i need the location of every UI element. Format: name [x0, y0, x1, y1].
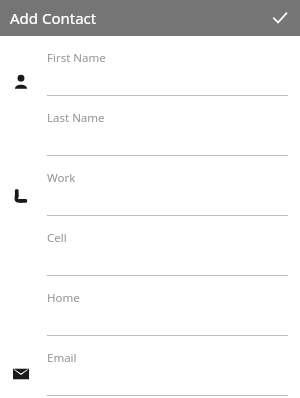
button[interactable]: First Name [0, 36, 300, 96]
staticText: Last Name [47, 110, 105, 126]
button[interactable]: Home [0, 276, 300, 336]
staticText: Email [47, 350, 77, 366]
button[interactable]: Cell [0, 216, 300, 276]
button[interactable]: Save contact [266, 4, 294, 32]
button[interactable]: Email [0, 336, 300, 396]
button[interactable]: Work [0, 156, 300, 216]
staticText: Home [47, 290, 80, 306]
staticText: First Name [47, 50, 106, 66]
staticText: Add Contact [10, 8, 97, 28]
button[interactable]: Last Name [0, 96, 300, 156]
staticText: Cell [47, 230, 67, 246]
staticText: Work [47, 170, 76, 186]
